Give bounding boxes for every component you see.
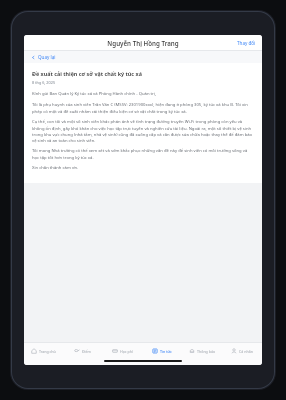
button[interactable]: Trang chủ <box>24 343 63 359</box>
staticText: Tôi mong Nhà trường có thể xem xét và sớ… <box>32 148 254 160</box>
staticText: Nguyễn Thị Hồng Trang <box>107 39 179 47</box>
staticText: Trang chủ <box>39 349 56 354</box>
button[interactable]: Cá nhân <box>222 343 262 359</box>
button[interactable]: Học phí <box>102 343 142 359</box>
staticText: Học phí <box>120 349 133 354</box>
staticText: Tôi là phụ huynh của sinh viên Trần Văn … <box>32 102 254 114</box>
staticText: Thông báo <box>197 349 216 354</box>
button[interactable]: Tin tức <box>142 343 182 359</box>
staticText: Kính gửi Ban Quản lý Ký túc xá và Phòng … <box>32 91 157 97</box>
button[interactable]: Điểm <box>63 343 102 359</box>
staticText: Cụ thể, con tôi và một số sinh viên khác… <box>32 119 254 143</box>
button[interactable]: Quay lại <box>24 51 262 63</box>
staticText: Xin chân thành cảm ơn. <box>32 165 79 171</box>
button[interactable]: Thay đổi <box>231 37 262 49</box>
staticText: Tin tức <box>160 349 172 354</box>
staticText: Đề xuất cải thiện cơ sở vật chất ký túc … <box>32 70 142 77</box>
staticText: Quay lại <box>38 54 56 60</box>
staticText: Điểm <box>82 349 91 354</box>
staticText: Thay đổi <box>237 40 256 46</box>
staticText: Cá nhân <box>239 349 253 354</box>
staticText: 8 thg 6, 2025 <box>32 80 56 85</box>
button[interactable]: Thông báo <box>182 343 222 359</box>
